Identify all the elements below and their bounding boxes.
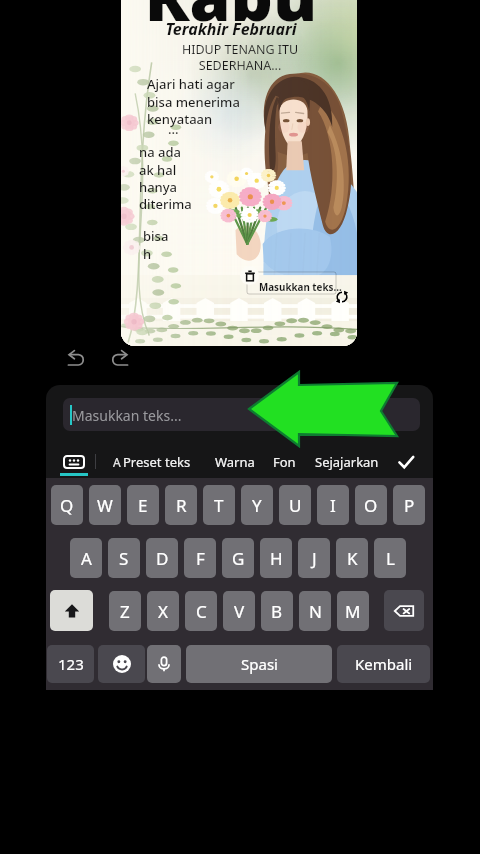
button[interactable]: Voice input xyxy=(147,645,181,683)
button[interactable]: Z xyxy=(109,591,141,631)
staticText: A xyxy=(81,547,92,570)
staticText: na ada ak hal hanya diterima xyxy=(139,143,192,213)
staticText: T xyxy=(214,494,224,517)
staticText: M xyxy=(345,600,361,623)
staticText: Spasi xyxy=(241,654,278,674)
staticText: Kembali xyxy=(355,654,413,674)
staticText: O xyxy=(364,494,378,517)
button[interactable]: A xyxy=(113,442,191,482)
button[interactable]: C xyxy=(185,591,217,631)
staticText: Preset teks xyxy=(123,453,191,471)
button[interactable]: Kembali xyxy=(337,645,430,683)
button[interactable]: L xyxy=(374,538,406,578)
staticText: B xyxy=(271,600,283,623)
staticText: H xyxy=(270,547,283,570)
staticText: Masukkan teks... xyxy=(72,406,182,425)
button[interactable]: G xyxy=(222,538,254,578)
staticText: G xyxy=(232,547,245,570)
staticText: W xyxy=(97,494,113,517)
staticText: bisa h xyxy=(143,227,169,263)
button[interactable]: Backspace xyxy=(384,590,424,631)
staticText: U xyxy=(289,494,302,517)
button[interactable]: H xyxy=(260,538,292,578)
button[interactable]: Undo xyxy=(60,344,91,374)
button[interactable]: Sejajarkan xyxy=(315,442,379,482)
button[interactable]: Redo xyxy=(104,344,135,374)
staticText: Q xyxy=(60,494,74,517)
button[interactable]: W xyxy=(89,485,121,525)
button[interactable]: U xyxy=(279,485,311,525)
button[interactable]: Rotate xyxy=(334,289,350,305)
staticText: 123 xyxy=(58,654,84,674)
button[interactable]: Fon xyxy=(273,442,296,482)
button[interactable]: T xyxy=(203,485,235,525)
button[interactable]: Numbers xyxy=(47,645,94,683)
button[interactable]: Q xyxy=(51,485,83,525)
button[interactable]: Spasi xyxy=(186,645,332,683)
button[interactable]: A xyxy=(70,538,102,578)
staticText: Z xyxy=(120,600,130,623)
staticText: E xyxy=(138,494,148,517)
staticText: A xyxy=(113,454,121,470)
staticText: Y xyxy=(252,494,262,517)
staticText: R xyxy=(176,494,187,517)
staticText: Sejajarkan xyxy=(315,453,379,471)
button[interactable]: Done xyxy=(391,442,421,482)
button[interactable]: Masukkan teks... xyxy=(63,398,420,431)
staticText: Rabu xyxy=(121,0,349,40)
staticText: ... xyxy=(168,120,179,138)
staticText: P xyxy=(404,494,415,517)
staticText: X xyxy=(158,600,168,623)
button[interactable]: D xyxy=(146,538,178,578)
button[interactable]: Masukkan teks... xyxy=(247,272,336,294)
staticText: Terakhir Februari xyxy=(121,18,349,40)
button[interactable]: P xyxy=(393,485,425,525)
button[interactable]: Delete xyxy=(240,266,259,285)
staticText: F xyxy=(196,547,205,570)
button[interactable]: Warna xyxy=(215,442,255,482)
button[interactable]: Keyboard xyxy=(58,442,90,482)
staticText: Masukkan teks... xyxy=(259,281,342,294)
button[interactable]: N xyxy=(299,591,331,631)
button[interactable]: K xyxy=(336,538,368,578)
staticText: Fon xyxy=(273,453,296,471)
button[interactable]: B xyxy=(261,591,293,631)
staticText: Ajari hati agar bisa menerima kenyataan xyxy=(147,75,240,128)
staticText: D xyxy=(156,547,169,570)
staticText: S xyxy=(119,547,129,570)
button[interactable]: O xyxy=(355,485,387,525)
button[interactable]: F xyxy=(184,538,216,578)
button[interactable]: E xyxy=(127,485,159,525)
staticText: C xyxy=(196,600,207,623)
button[interactable]: I xyxy=(317,485,349,525)
staticText: K xyxy=(347,547,358,570)
staticText: V xyxy=(234,600,245,623)
button[interactable]: X xyxy=(147,591,179,631)
staticText: HIDUP TENANG ITU SEDERHANA... xyxy=(122,41,357,73)
button[interactable]: S xyxy=(108,538,140,578)
button[interactable]: Emoji xyxy=(98,645,145,683)
button[interactable]: Shift xyxy=(50,590,93,631)
staticText: I xyxy=(330,494,336,517)
staticText: N xyxy=(309,600,322,623)
staticText: J xyxy=(312,547,317,570)
button[interactable]: M xyxy=(337,591,369,631)
staticText: Warna xyxy=(215,453,255,471)
button[interactable]: R xyxy=(165,485,197,525)
button[interactable]: V xyxy=(223,591,255,631)
staticText: L xyxy=(386,547,395,570)
button[interactable]: J xyxy=(298,538,330,578)
button[interactable]: Y xyxy=(241,485,273,525)
